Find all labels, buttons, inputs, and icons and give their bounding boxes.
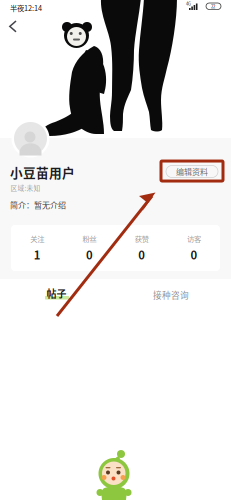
staticText: 粉丝 xyxy=(82,233,96,244)
staticText: 访客 xyxy=(187,233,201,244)
staticText: 0 xyxy=(86,246,93,263)
staticText: 区域:未知 xyxy=(10,183,40,193)
button[interactable]: 接种咨询 xyxy=(151,287,191,303)
staticText: 0 xyxy=(190,246,197,263)
staticText: 小豆苗用户 xyxy=(10,163,75,181)
staticText: 4G xyxy=(186,0,191,7)
button[interactable]: 帖子 xyxy=(44,286,72,304)
staticText: 接种咨询 xyxy=(153,289,189,301)
button[interactable]: Back xyxy=(0,0,32,52)
staticText: 半夜12:14 xyxy=(10,2,42,13)
button[interactable]: 编辑资料 xyxy=(166,165,218,177)
staticText: 帖子 xyxy=(46,286,66,300)
staticText: 简介：暂无介绍 xyxy=(10,199,66,211)
staticText: 获赞 xyxy=(135,233,149,244)
staticText: 22 xyxy=(211,3,215,9)
staticText: 1 xyxy=(34,246,41,263)
staticText: 0 xyxy=(138,246,145,263)
staticText: 关注 xyxy=(30,233,44,244)
staticText: 编辑资料 xyxy=(176,166,208,177)
